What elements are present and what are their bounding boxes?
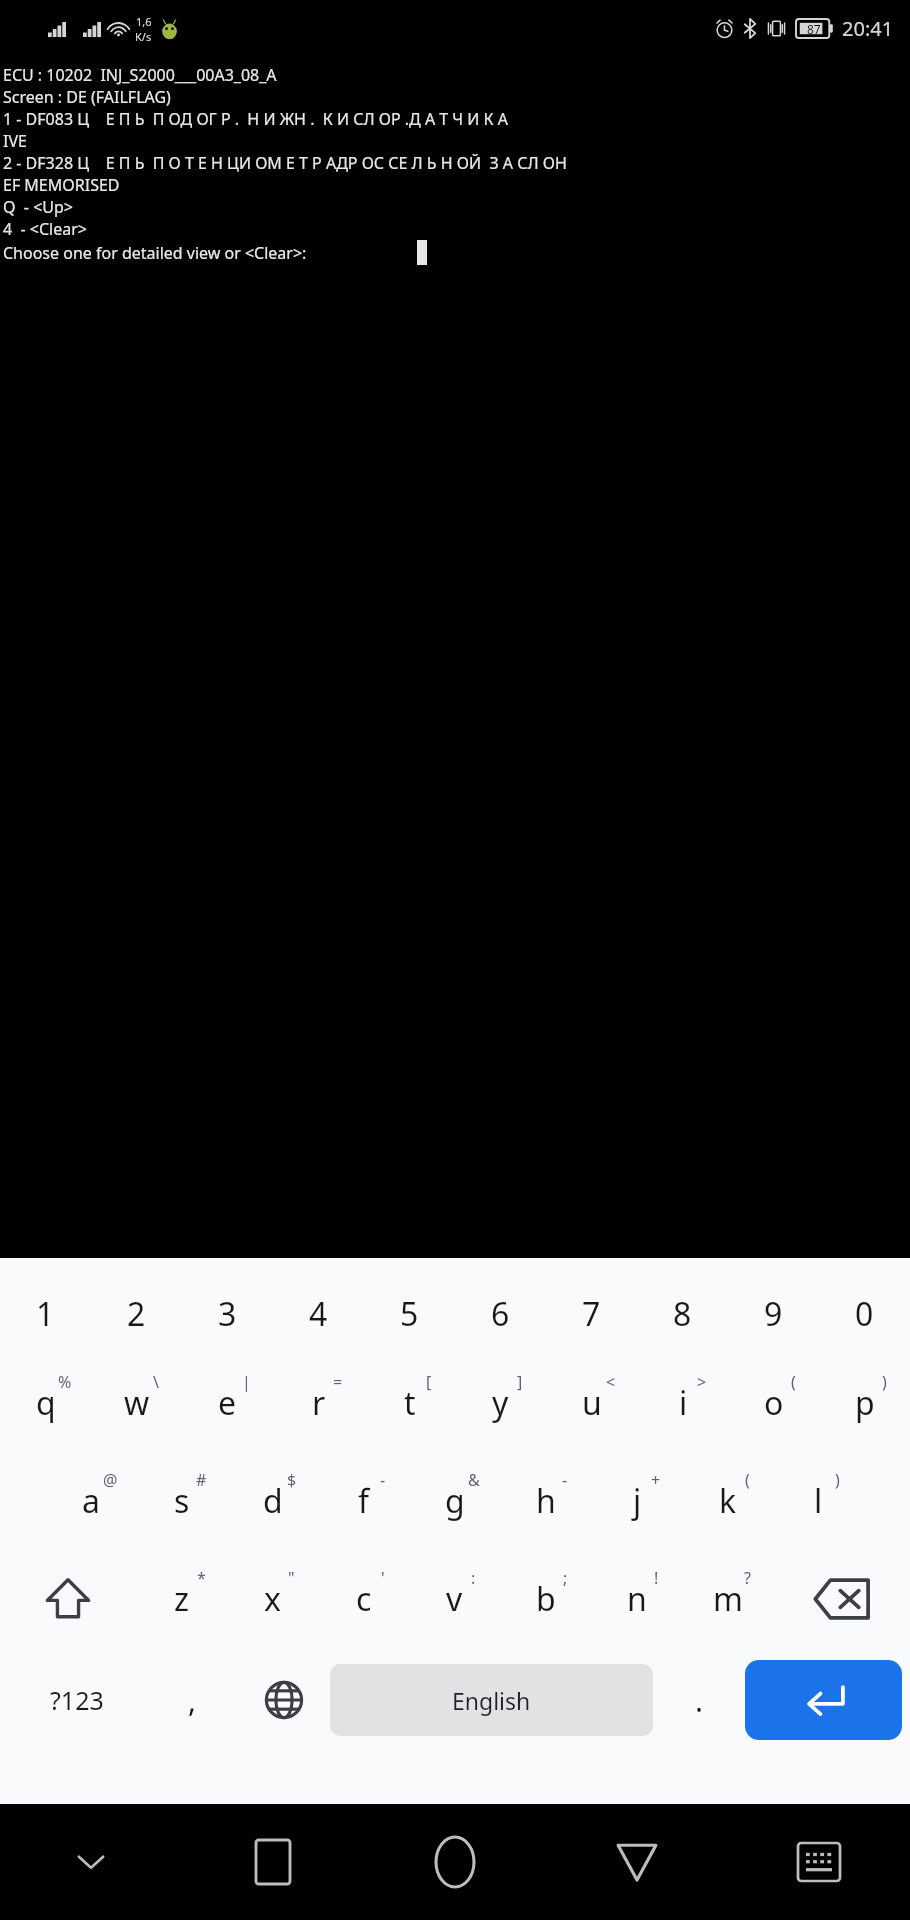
button[interactable]: 1 <box>0 1274 91 1354</box>
staticText: r <box>312 1381 326 1425</box>
staticText: h <box>536 1479 556 1523</box>
staticText: < <box>606 1371 616 1393</box>
button[interactable]: Change language <box>238 1648 330 1752</box>
staticText: 4 - <Clear> <box>3 218 87 240</box>
staticText: t <box>404 1381 416 1425</box>
button[interactable]: u <box>546 1354 637 1452</box>
button[interactable]: m <box>682 1550 773 1648</box>
staticText: a <box>82 1479 100 1523</box>
staticText: EF MEMORISED <box>3 174 120 196</box>
button[interactable]: a <box>45 1452 136 1550</box>
button[interactable]: l <box>773 1452 864 1550</box>
button[interactable]: . <box>653 1648 745 1752</box>
staticText: 6 <box>491 1292 510 1336</box>
staticText: s <box>174 1479 190 1523</box>
staticText: ' <box>381 1567 385 1589</box>
staticText: u <box>582 1381 602 1425</box>
staticText: y <box>492 1381 509 1425</box>
button[interactable]: 7 <box>546 1274 637 1354</box>
staticText: 9 <box>764 1292 783 1336</box>
staticText: % <box>58 1371 72 1393</box>
button[interactable]: English <box>330 1664 653 1736</box>
staticText: + <box>651 1469 661 1491</box>
button[interactable]: 3 <box>182 1274 273 1354</box>
staticText: w <box>124 1381 150 1425</box>
staticText: * <box>197 1567 206 1589</box>
button[interactable]: o <box>728 1354 819 1452</box>
staticText: . <box>695 1680 704 1721</box>
button[interactable]: c <box>318 1550 409 1648</box>
staticText: K/s <box>135 29 152 44</box>
staticText: @ <box>103 1469 118 1491</box>
staticText: e <box>218 1381 237 1425</box>
button[interactable]: p <box>819 1354 910 1452</box>
button[interactable]: g <box>409 1452 500 1550</box>
button[interactable]: y <box>455 1354 546 1452</box>
button[interactable]: j <box>591 1452 682 1550</box>
button[interactable]: q <box>0 1354 91 1452</box>
staticText: o <box>764 1381 784 1425</box>
staticText: English <box>452 1685 531 1716</box>
button[interactable]: h <box>500 1452 591 1550</box>
staticText: [ <box>426 1371 432 1393</box>
button[interactable]: v <box>409 1550 500 1648</box>
button[interactable]: k <box>682 1452 773 1550</box>
staticText: z <box>174 1577 190 1621</box>
staticText: - <box>562 1469 568 1491</box>
staticText: ECU : 10202 INJ_S2000___00A3_08_A <box>3 64 277 86</box>
button[interactable]: t <box>364 1354 455 1452</box>
button[interactable]: 6 <box>455 1274 546 1354</box>
staticText: $ <box>287 1469 297 1491</box>
staticText: 1 - DF083 Ц Е П Ь П ОД ОГ Р . Н И ЖН . К… <box>3 108 508 130</box>
button[interactable]: d <box>227 1452 318 1550</box>
button[interactable]: 5 <box>364 1274 455 1354</box>
staticText: ; <box>563 1567 568 1589</box>
button[interactable]: n <box>591 1550 682 1648</box>
button[interactable]: b <box>500 1550 591 1648</box>
staticText: \ <box>153 1371 159 1393</box>
button[interactable]: 2 <box>91 1274 182 1354</box>
button[interactable]: Back <box>546 1804 728 1920</box>
button[interactable]: e <box>182 1354 273 1452</box>
staticText: " <box>288 1567 295 1589</box>
button[interactable]: Hide keyboard <box>0 1804 182 1920</box>
button[interactable]: ?123 <box>8 1648 146 1752</box>
staticText: ( <box>745 1469 750 1491</box>
staticText: 3 <box>218 1292 237 1336</box>
staticText: i <box>679 1381 688 1425</box>
staticText: ) <box>882 1371 887 1393</box>
staticText: n <box>627 1577 647 1621</box>
staticText: m <box>713 1577 743 1621</box>
staticText: 1 <box>36 1292 55 1336</box>
button[interactable]: 0 <box>819 1274 910 1354</box>
staticText: x <box>264 1577 281 1621</box>
staticText: | <box>242 1371 251 1393</box>
button[interactable]: 8 <box>637 1274 728 1354</box>
button[interactable]: , <box>146 1648 238 1752</box>
staticText: 5 <box>400 1292 419 1336</box>
button[interactable]: r <box>273 1354 364 1452</box>
staticText: & <box>468 1469 480 1491</box>
staticText: # <box>196 1469 207 1491</box>
staticText: - <box>380 1469 386 1491</box>
button[interactable]: 9 <box>728 1274 819 1354</box>
button[interactable]: Recents <box>182 1804 364 1920</box>
staticText: Q - <Up> <box>3 196 73 218</box>
button[interactable]: 4 <box>273 1274 364 1354</box>
button[interactable]: Backspace <box>773 1550 910 1648</box>
button[interactable]: Home <box>364 1804 546 1920</box>
button[interactable]: x <box>227 1550 318 1648</box>
staticText: 7 <box>582 1292 601 1336</box>
button[interactable]: s <box>136 1452 227 1550</box>
button[interactable]: f <box>318 1452 409 1550</box>
button[interactable]: Shift <box>0 1550 136 1648</box>
button[interactable]: z <box>136 1550 227 1648</box>
staticText: Choose one for detailed view or <Clear>: <box>3 242 307 264</box>
button[interactable]: i <box>637 1354 728 1452</box>
staticText: 2 - DF328 Ц Е П Ь П О Т Е Н ЦИ ОМ Е Т Р … <box>3 152 567 174</box>
button[interactable]: w <box>91 1354 182 1452</box>
button[interactable]: Enter <box>745 1660 902 1740</box>
button[interactable]: Switch keyboard <box>728 1804 910 1920</box>
staticText: > <box>697 1371 707 1393</box>
staticText: , <box>188 1680 197 1721</box>
